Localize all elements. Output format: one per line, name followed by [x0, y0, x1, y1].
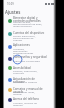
staticText: Acerca del teléfono: [13, 97, 47, 101]
staticText: 10:09: [7, 2, 14, 6]
staticText: Seguridad y privacidad: [13, 59, 43, 62]
button[interactable]: [0, 15, 64, 24]
staticText: Contraseñas y seguridad: [13, 55, 47, 59]
staticText: Actualizar el sistema: [13, 80, 43, 83]
button[interactable]: [0, 77, 64, 85]
button[interactable]: [0, 55, 64, 63]
staticText: Tiempo de uso, temporizadores de apps, M…: [13, 20, 45, 28]
staticText: Accesibilidad: [13, 66, 47, 70]
staticText: Correo electrónico, sincronización de cu…: [13, 34, 43, 42]
staticText: Pantalla, interacción, controles: [13, 69, 43, 75]
staticText: Consejos y manual de usuario: [13, 87, 47, 93]
staticText: Sugerencias útiles, manual: [13, 90, 43, 96]
staticText: Ajustes: [5, 9, 21, 15]
button[interactable]: [0, 65, 64, 73]
button[interactable]: [0, 43, 64, 51]
button[interactable]: [0, 30, 64, 38]
button[interactable]: [0, 87, 64, 95]
button[interactable]: [0, 97, 64, 105]
staticText: Aplicaciones: [13, 43, 47, 47]
staticText: Bienestar digital y controles parentales: [13, 16, 47, 22]
staticText: Nombre, número de teléfono: [13, 101, 43, 107]
staticText: Cuentas del dispositivo: [13, 31, 47, 35]
staticText: Asistente, aplicaciones predeterminadas: [13, 47, 39, 55]
staticText: Actualización de software: [13, 77, 47, 83]
